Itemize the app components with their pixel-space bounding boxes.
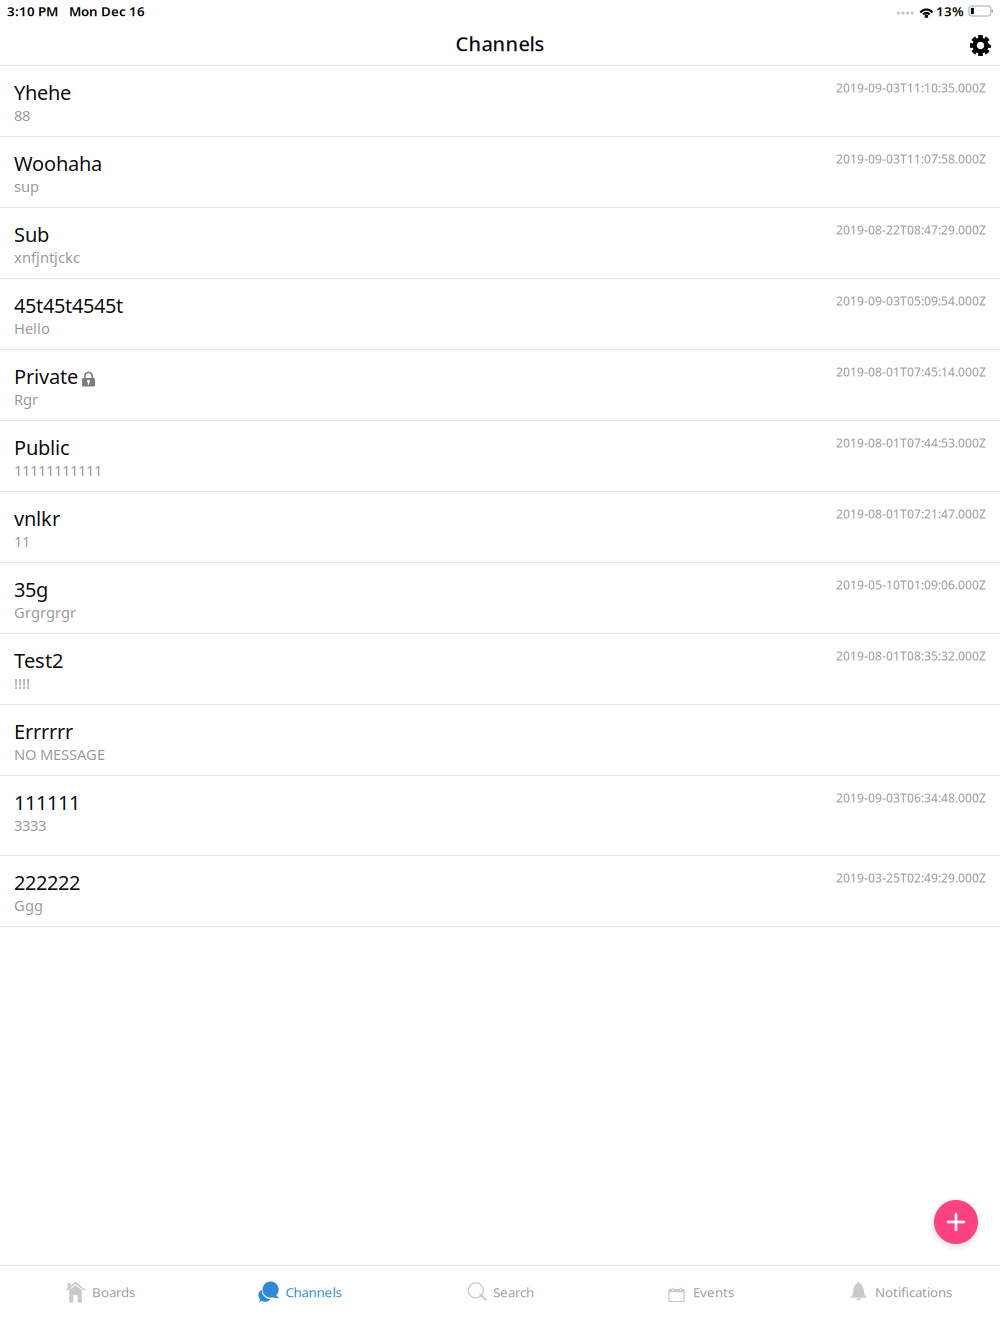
staticText: 45t45t4545t bbox=[14, 292, 123, 319]
staticText: NO MESSAGE bbox=[14, 745, 105, 764]
staticText: !!!! bbox=[14, 674, 30, 693]
staticText: Search bbox=[493, 1283, 534, 1301]
staticText: 2019-09-03T06:34:48.000Z bbox=[836, 790, 986, 806]
staticText: 2019-09-03T05:09:54.000Z bbox=[836, 293, 986, 309]
staticText: Woohaha bbox=[14, 150, 102, 177]
staticText: Mon Dec 16 bbox=[69, 2, 145, 20]
staticText: xnfjntjckc bbox=[14, 248, 80, 267]
staticText: 2019-08-01T07:44:53.000Z bbox=[836, 435, 986, 451]
staticText: Rgr bbox=[14, 390, 38, 409]
staticText: Events bbox=[693, 1283, 734, 1301]
button[interactable]: New channel bbox=[934, 1200, 978, 1244]
staticText: 2019-08-01T07:21:47.000Z bbox=[836, 506, 986, 522]
staticText: 2019-09-03T11:07:58.000Z bbox=[836, 151, 986, 167]
staticText: 2019-08-01T08:35:32.000Z bbox=[836, 648, 986, 664]
staticText: 3:10 PM bbox=[7, 2, 58, 20]
button[interactable]: vnlkr bbox=[0, 492, 1000, 562]
staticText: Yhehe bbox=[14, 79, 71, 106]
staticText: 222222 bbox=[14, 869, 80, 896]
button[interactable]: 35g bbox=[0, 563, 1000, 633]
staticText: 13% bbox=[936, 2, 964, 20]
staticText: 2019-08-01T07:45:14.000Z bbox=[836, 364, 986, 380]
button[interactable]: 222222 bbox=[0, 856, 1000, 926]
staticText: Channels bbox=[285, 1283, 341, 1301]
staticText: Private bbox=[14, 363, 78, 390]
staticText: 2019-09-03T11:10:35.000Z bbox=[836, 80, 986, 96]
button[interactable]: Yhehe bbox=[0, 66, 1000, 136]
staticText: Channels bbox=[455, 30, 544, 57]
staticText: 35g bbox=[14, 576, 48, 603]
button[interactable]: Boards bbox=[0, 1266, 200, 1318]
button[interactable]: Private bbox=[0, 350, 1000, 420]
button[interactable]: Test2 bbox=[0, 634, 1000, 704]
button[interactable]: Channels bbox=[200, 1266, 400, 1318]
staticText: 88 bbox=[14, 106, 30, 125]
staticText: 3333 bbox=[14, 816, 46, 835]
staticText: sup bbox=[14, 177, 39, 196]
staticText: 2019-03-25T02:49:29.000Z bbox=[836, 870, 986, 886]
staticText: Sub bbox=[14, 221, 49, 248]
button[interactable]: Events bbox=[600, 1266, 800, 1318]
button[interactable]: Settings bbox=[959, 22, 1000, 65]
staticText: Boards bbox=[92, 1283, 135, 1301]
button[interactable]: Errrrrr bbox=[0, 705, 1000, 775]
staticText: Ggg bbox=[14, 896, 43, 915]
button[interactable]: 45t45t4545t bbox=[0, 279, 1000, 349]
button[interactable]: 111111 bbox=[0, 776, 1000, 855]
staticText: vnlkr bbox=[14, 505, 60, 532]
button[interactable]: Search bbox=[400, 1266, 600, 1318]
staticText: 2019-05-10T01:09:06.000Z bbox=[836, 577, 986, 593]
staticText: Public bbox=[14, 434, 70, 461]
staticText: Grgrgrgr bbox=[14, 603, 76, 622]
staticText: 11111111111 bbox=[14, 461, 102, 480]
staticText: 11 bbox=[14, 532, 30, 551]
button[interactable]: Notifications bbox=[800, 1266, 1000, 1318]
staticText: 111111 bbox=[14, 789, 80, 816]
button[interactable]: Sub bbox=[0, 208, 1000, 278]
staticText: 2019-08-22T08:47:29.000Z bbox=[836, 222, 986, 238]
staticText: Test2 bbox=[14, 647, 63, 674]
button[interactable]: Woohaha bbox=[0, 137, 1000, 207]
staticText: Errrrrr bbox=[14, 718, 73, 745]
staticText: Hello bbox=[14, 319, 50, 338]
staticText: Notifications bbox=[875, 1283, 952, 1301]
button[interactable]: Public bbox=[0, 421, 1000, 491]
